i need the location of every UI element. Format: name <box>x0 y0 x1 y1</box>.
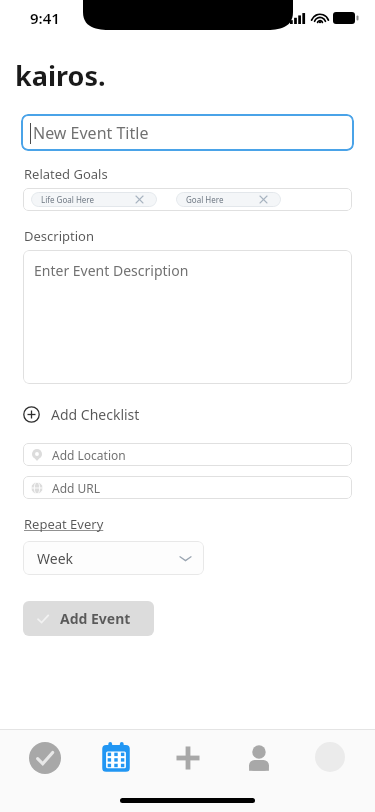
button[interactable]: Add Event <box>23 601 154 636</box>
button[interactable]: Calendar <box>90 742 142 786</box>
button[interactable]: Week <box>23 541 204 575</box>
button[interactable]: Add URL <box>23 476 352 499</box>
staticText: Related Goals <box>24 165 108 183</box>
staticText: Enter Event Description <box>34 261 189 280</box>
button[interactable]: Profile <box>233 742 285 786</box>
button[interactable]: Add Checklist <box>23 401 140 427</box>
staticText: kairos. <box>15 57 106 94</box>
staticText: Add Event <box>60 609 131 628</box>
staticText: Repeat Every <box>24 515 104 533</box>
button[interactable]: New Event Title <box>21 114 354 151</box>
staticText: 9:41 <box>30 8 60 28</box>
staticText: Add Location <box>52 447 126 463</box>
staticText: Add URL <box>52 480 101 496</box>
button[interactable]: Goal Here <box>176 192 281 207</box>
button[interactable]: Tasks <box>19 742 71 786</box>
staticText: Life Goal Here <box>41 194 94 205</box>
staticText: Add Checklist <box>51 405 140 424</box>
button[interactable]: Life Goal Here <box>31 192 157 207</box>
button[interactable]: Add <box>162 742 214 786</box>
staticText: Goal Here <box>186 194 224 205</box>
button[interactable]: Enter Event Description <box>23 250 352 384</box>
button[interactable]: Add Location <box>23 443 352 466</box>
button[interactable]: More <box>304 742 356 786</box>
staticText: New Event Title <box>33 122 149 144</box>
staticText: Description <box>24 227 94 245</box>
staticText: Week <box>37 549 74 568</box>
